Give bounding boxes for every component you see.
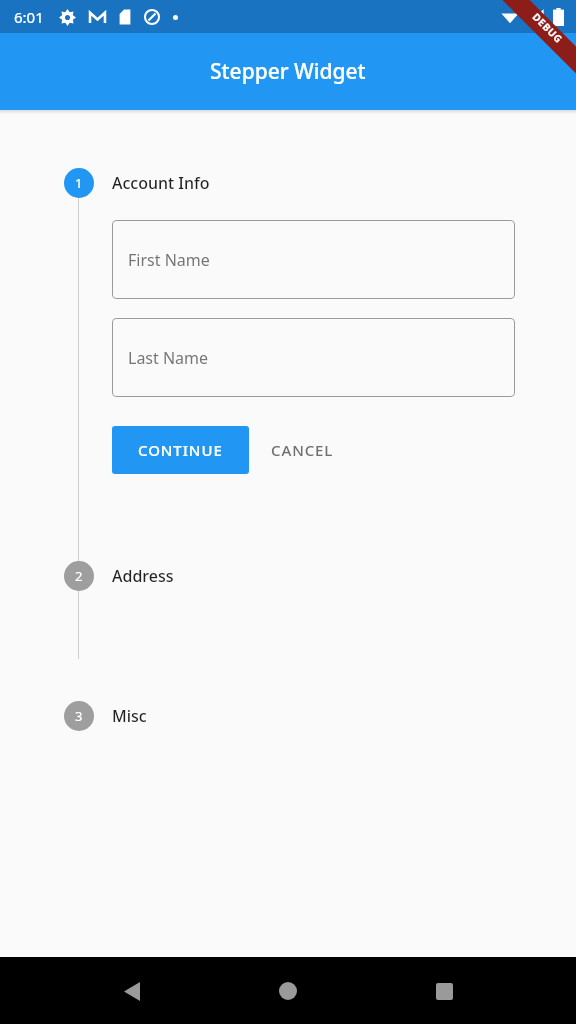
staticText: Misc bbox=[112, 705, 147, 727]
button[interactable]: CONTINUE bbox=[112, 426, 249, 474]
button[interactable]: Back bbox=[108, 967, 156, 1015]
button[interactable]: 3 bbox=[0, 699, 576, 733]
button[interactable]: 2 bbox=[0, 559, 576, 593]
button[interactable]: Last Name bbox=[112, 318, 515, 397]
staticText: 1 bbox=[75, 174, 83, 192]
staticText: 6:01 bbox=[14, 7, 44, 27]
staticText: CONTINUE bbox=[138, 440, 223, 460]
button[interactable]: Recent apps bbox=[420, 967, 468, 1015]
staticText: Stepper Widget bbox=[210, 57, 366, 86]
staticText: Last Name bbox=[128, 347, 209, 369]
button[interactable]: First Name bbox=[112, 220, 515, 299]
staticText: 2 bbox=[75, 567, 83, 585]
staticText: CANCEL bbox=[271, 440, 334, 460]
button[interactable]: CANCEL bbox=[249, 426, 356, 474]
button[interactable]: 1 bbox=[0, 166, 576, 200]
staticText: Account Info bbox=[112, 172, 210, 194]
staticText: Address bbox=[112, 565, 174, 587]
button[interactable]: Home bbox=[264, 967, 312, 1015]
staticText: 3 bbox=[75, 707, 83, 725]
staticText: First Name bbox=[128, 249, 210, 271]
staticText: DEBUG bbox=[530, 10, 566, 46]
